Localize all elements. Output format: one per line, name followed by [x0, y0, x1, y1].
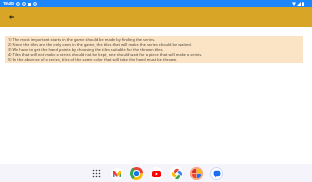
button[interactable]: All apps	[90, 167, 103, 180]
staticText: 4) Tiles that will not make a series sho…	[8, 52, 203, 57]
button[interactable]: Messages	[210, 167, 223, 180]
button[interactable]: Chrome	[130, 167, 143, 180]
staticText: 19:20	[3, 1, 14, 7]
staticText: 5) In the absence of a series, tiles of …	[8, 57, 178, 62]
button[interactable]: Folder	[190, 167, 203, 180]
button[interactable]: YouTube	[150, 167, 163, 180]
staticText: 3) We have to get the hand points by cho…	[8, 47, 164, 52]
staticText: 2) Since the tiles are the only ones in …	[8, 42, 192, 47]
button[interactable]: Back	[5, 11, 17, 23]
staticText: 1) The most important starts in the game…	[8, 37, 156, 42]
button[interactable]: Gmail	[110, 167, 123, 180]
button[interactable]: Photos	[170, 167, 183, 180]
